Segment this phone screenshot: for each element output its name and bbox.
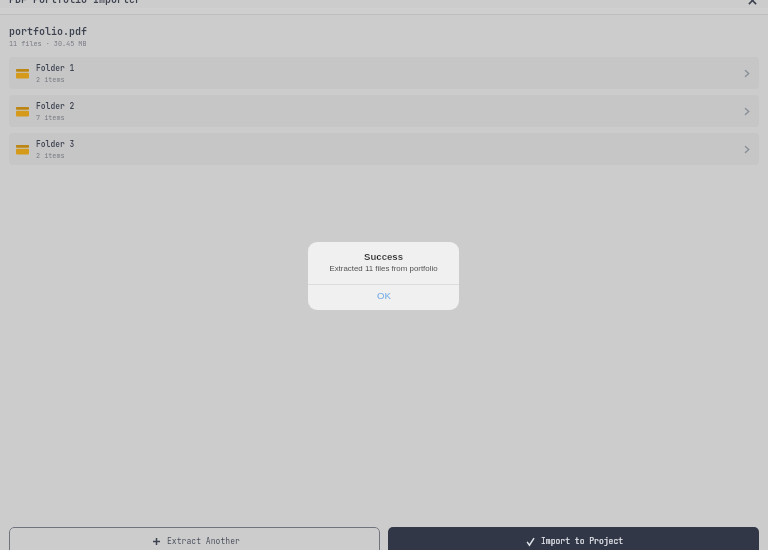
staticText: Extracted 11 files from portfolio <box>308 264 459 273</box>
button[interactable]: Folder 2 <box>9 95 759 127</box>
staticText: Extract Another <box>167 536 240 547</box>
button[interactable]: OK <box>308 284 459 310</box>
staticText: Folder 1 <box>36 63 75 74</box>
staticText: 2 items <box>36 151 65 160</box>
staticText: PDF Portfolio Importer <box>9 0 141 6</box>
button[interactable]: Folder 1 <box>9 57 759 89</box>
staticText: Folder 3 <box>36 139 75 150</box>
staticText: Success <box>308 251 459 262</box>
staticText: 11 files · 30.45 MB <box>9 39 87 48</box>
staticText: Import to Project <box>541 536 624 547</box>
button[interactable]: Close <box>746 0 759 7</box>
staticText: OK <box>377 290 391 301</box>
staticText: portfolio.pdf <box>9 25 87 38</box>
staticText: Folder 2 <box>36 101 75 112</box>
staticText: 7 items <box>36 113 65 122</box>
button[interactable]: Folder 3 <box>9 133 759 165</box>
button[interactable]: Extract Another <box>9 527 380 550</box>
staticText: 2 items <box>36 75 65 84</box>
button[interactable]: Import to Project <box>388 527 759 550</box>
